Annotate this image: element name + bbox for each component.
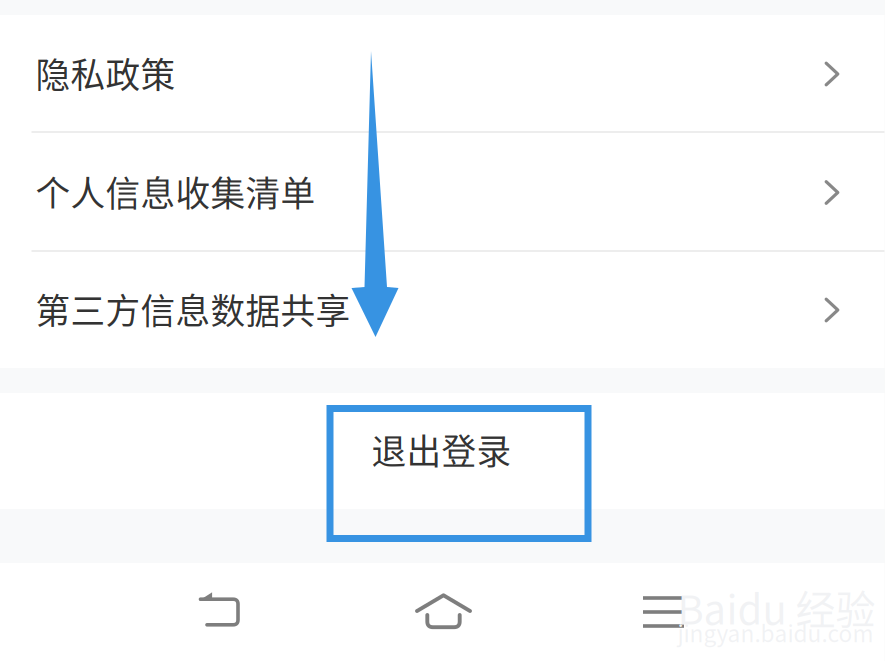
button[interactable]: Recent apps [589,563,737,661]
staticText: 第三方信息数据共享 [35,284,350,334]
staticText: 隐私政策 [35,48,175,98]
staticText: Baidu 经验 [677,578,875,636]
button[interactable]: 第三方信息数据共享 [0,252,884,368]
button[interactable]: 个人信息收集清单 [0,133,884,252]
button[interactable]: 退出登录 [0,393,884,509]
button[interactable]: Home [369,563,517,661]
staticText: jingyan.baidu.com [677,616,873,649]
button[interactable]: Back [145,563,293,661]
staticText: 退出登录 [371,424,511,475]
staticText: 个人信息收集清单 [35,166,315,217]
button[interactable]: 隐私政策 [0,15,884,133]
